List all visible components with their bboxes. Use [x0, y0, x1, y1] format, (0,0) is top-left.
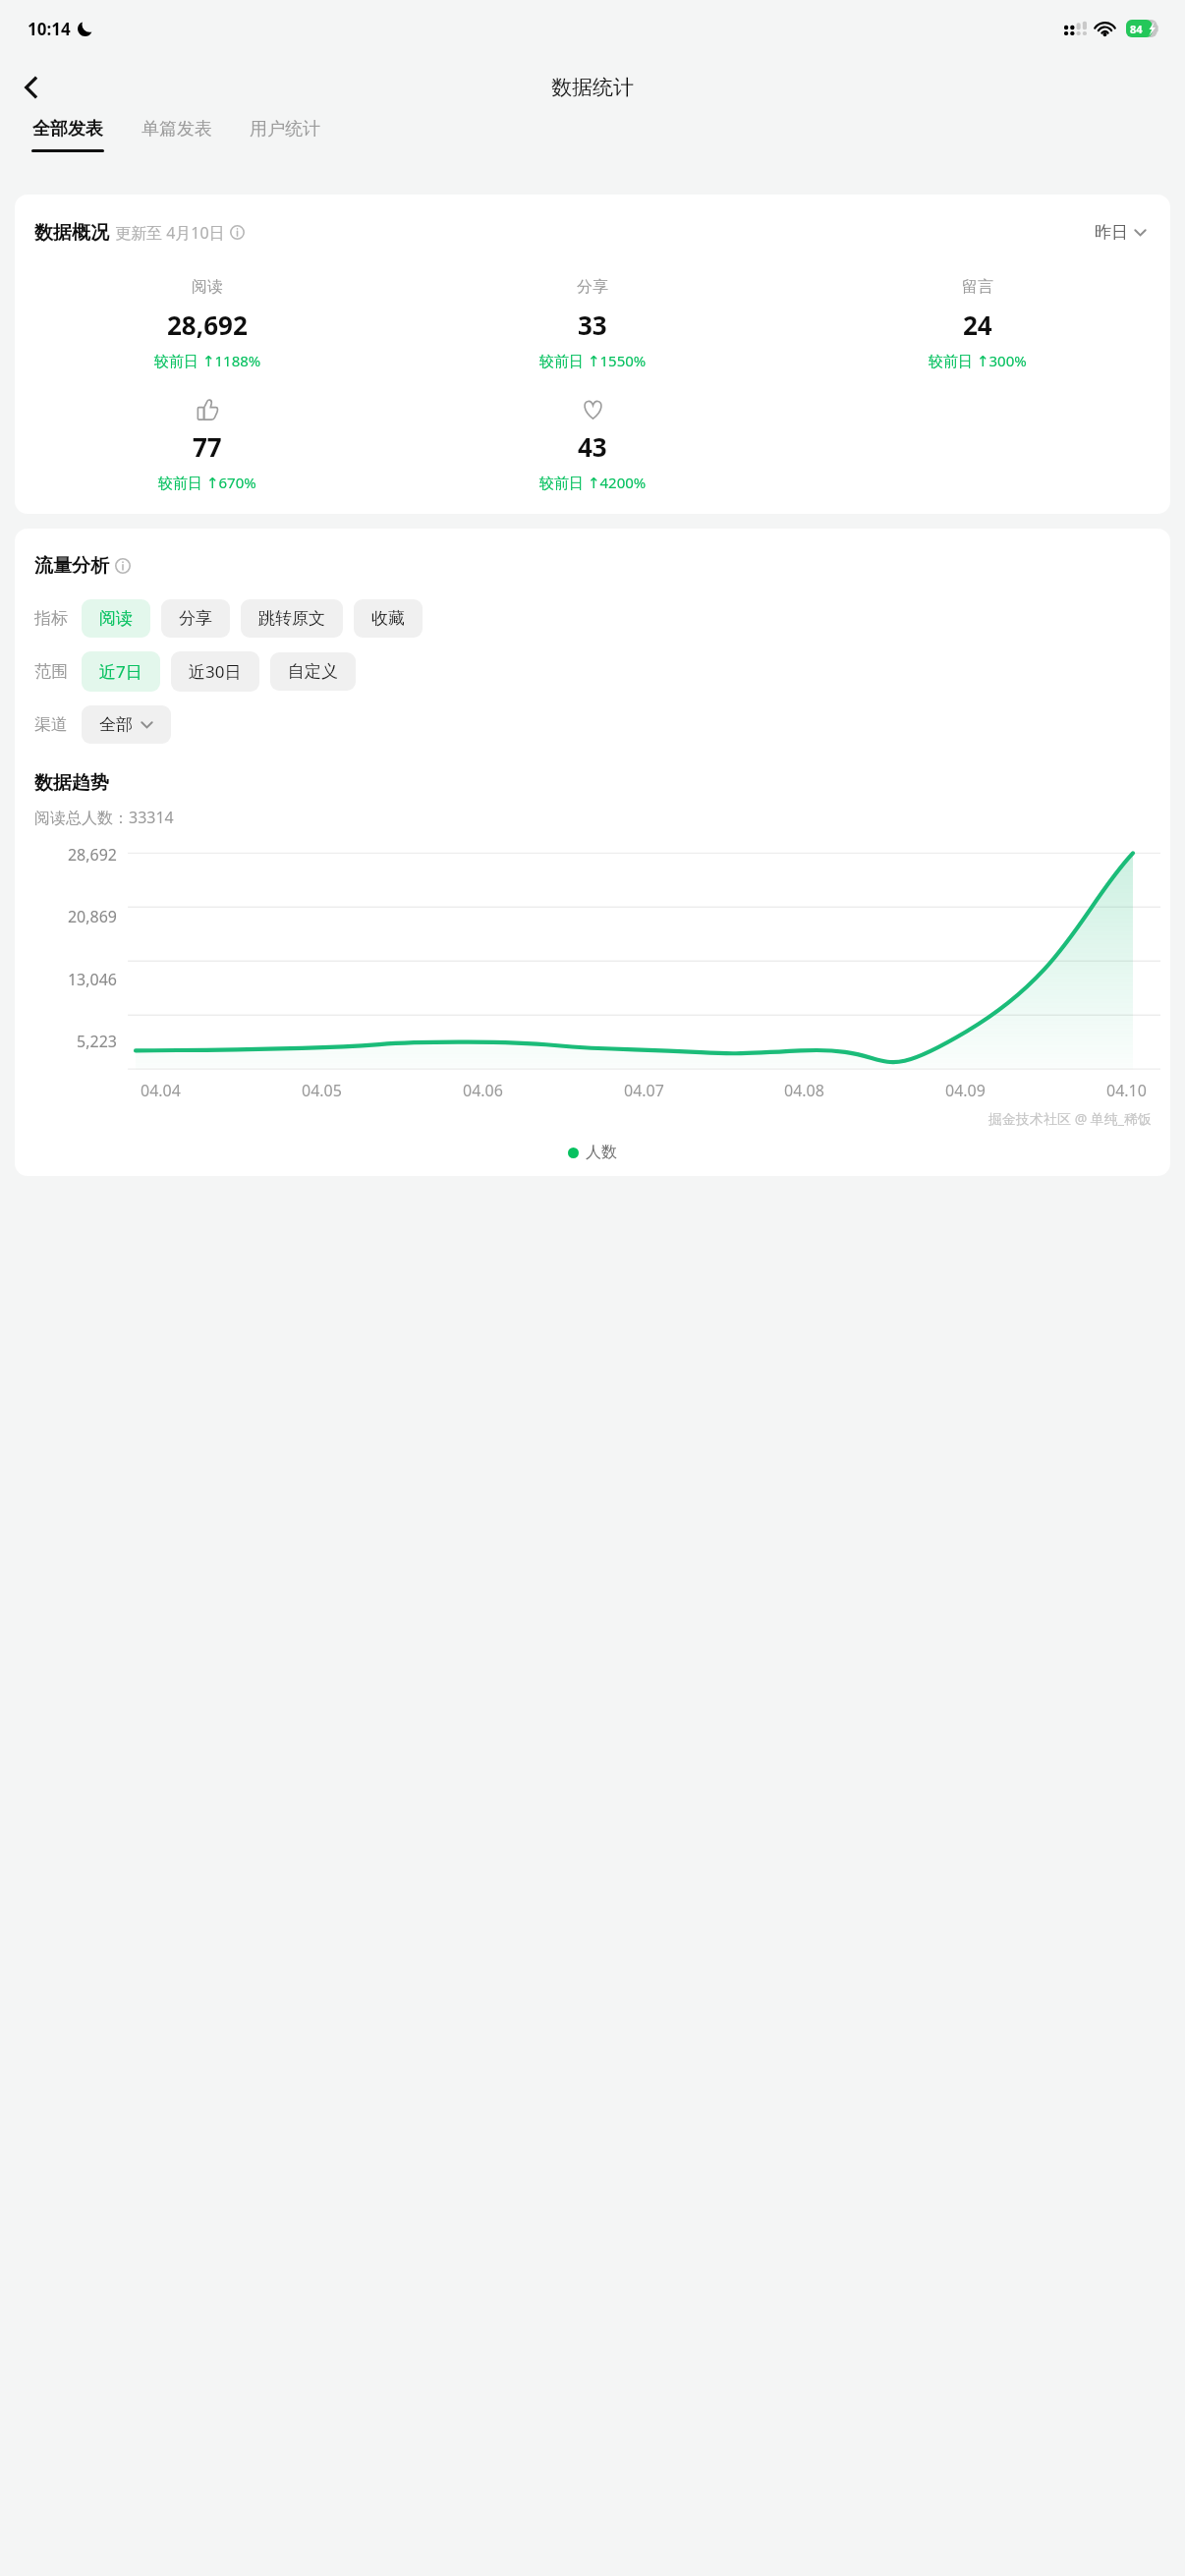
- button[interactable]: 收藏: [354, 599, 423, 638]
- staticText: 04.09: [945, 1080, 986, 1101]
- staticText: 数据统计: [551, 75, 634, 100]
- staticText: 04.07: [624, 1080, 664, 1101]
- staticText: 数据概况: [34, 221, 109, 245]
- staticText: 近7日: [99, 660, 142, 683]
- staticText: 分享: [179, 608, 212, 629]
- staticText: 较前日 ↑1550%: [539, 351, 647, 370]
- staticText: 43: [578, 429, 607, 464]
- button[interactable]: 留言: [785, 274, 1170, 370]
- staticText: 阅读: [192, 277, 223, 297]
- staticText: 全部: [99, 714, 133, 735]
- staticText: 范围: [34, 661, 68, 682]
- staticText: 人数: [586, 1143, 617, 1162]
- staticText: 跳转原文: [258, 608, 325, 629]
- button[interactable]: 跳转原文: [241, 599, 343, 638]
- button[interactable]: 43: [400, 396, 785, 492]
- button[interactable]: 昨日: [1091, 218, 1151, 247]
- staticText: 10:14: [28, 18, 71, 40]
- staticText: 13,046: [32, 969, 117, 990]
- staticText: 24: [963, 308, 992, 342]
- button[interactable]: 分享: [161, 599, 230, 638]
- button[interactable]: 近30日: [171, 651, 259, 692]
- button[interactable]: 分享: [400, 274, 785, 370]
- button[interactable]: 77: [15, 396, 400, 492]
- button[interactable]: 近7日: [82, 651, 160, 692]
- staticText: 流量分析: [34, 554, 109, 578]
- staticText: 留言: [962, 277, 993, 297]
- button[interactable]: Back: [8, 64, 55, 111]
- staticText: 自定义: [288, 661, 338, 682]
- staticText: 昨日: [1095, 222, 1128, 243]
- button[interactable]: 全部: [82, 705, 171, 744]
- staticText: 掘金技术社区 @ 单纯_稀饭: [988, 1109, 1153, 1128]
- staticText: 渠道: [34, 714, 68, 735]
- button[interactable]: 阅读: [15, 274, 400, 370]
- staticText: 04.04: [141, 1080, 181, 1101]
- staticText: 收藏: [371, 608, 405, 629]
- staticText: 77: [193, 429, 222, 464]
- staticText: 84: [1130, 22, 1143, 36]
- staticText: 5,223: [32, 1031, 117, 1052]
- staticText: 04.08: [784, 1080, 824, 1101]
- staticText: 33: [578, 308, 607, 342]
- button[interactable]: 阅读: [82, 599, 150, 638]
- button[interactable]: 单篇发表: [134, 118, 220, 152]
- staticText: 更新至 4月10日: [115, 222, 225, 244]
- staticText: 全部发表: [32, 118, 103, 140]
- staticText: 阅读总人数：33314: [34, 807, 174, 828]
- staticText: 较前日 ↑4200%: [539, 473, 647, 492]
- staticText: 用户统计: [250, 118, 320, 140]
- staticText: 04.05: [302, 1080, 342, 1101]
- staticText: 单篇发表: [141, 118, 212, 140]
- button[interactable]: 全部发表: [24, 118, 112, 152]
- staticText: 20,869: [32, 906, 117, 927]
- staticText: 较前日 ↑300%: [929, 351, 1027, 370]
- button[interactable]: 自定义: [270, 652, 356, 691]
- button[interactable]: 用户统计: [242, 118, 328, 152]
- staticText: 近30日: [189, 660, 242, 683]
- staticText: 28,692: [32, 844, 117, 866]
- staticText: 较前日 ↑1188%: [154, 351, 261, 370]
- staticText: 04.06: [463, 1080, 503, 1101]
- staticText: 较前日 ↑670%: [158, 473, 256, 492]
- staticText: 指标: [34, 608, 68, 629]
- staticText: 数据趋势: [34, 771, 109, 795]
- staticText: 阅读: [99, 608, 133, 629]
- staticText: 04.10: [1106, 1080, 1147, 1101]
- staticText: 28,692: [167, 308, 248, 342]
- staticText: 分享: [577, 277, 608, 297]
